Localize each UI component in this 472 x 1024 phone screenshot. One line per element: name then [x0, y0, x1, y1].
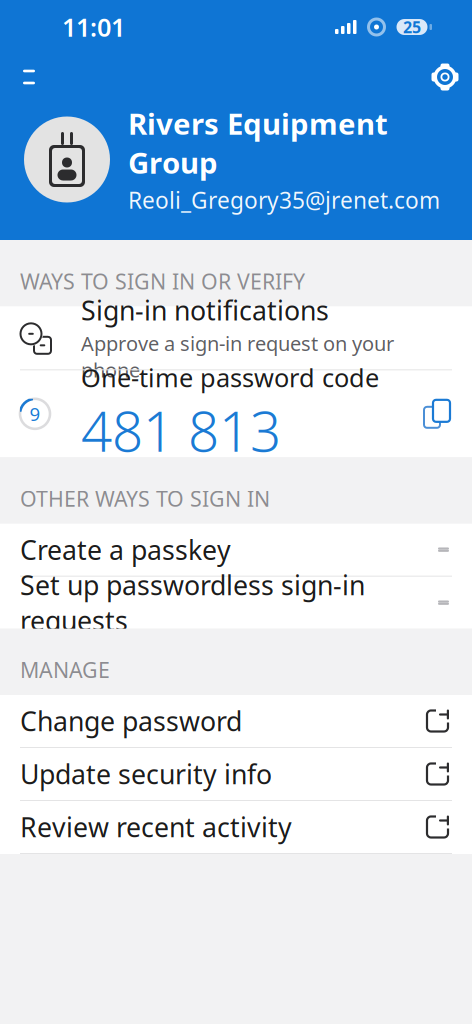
staticText: 25: [403, 16, 421, 38]
staticText: Approve a sign-in request on your phone: [81, 330, 394, 383]
staticText: OTHER WAYS TO SIGN IN: [20, 484, 270, 513]
staticText: 11:01: [62, 10, 125, 44]
button[interactable]: Set up passwordless sign-in requests: [0, 577, 472, 629]
staticText: Review recent activity: [20, 809, 292, 845]
button[interactable]: Update security info: [0, 748, 472, 800]
staticText: WAYS TO SIGN IN OR VERIFY: [20, 267, 305, 295]
button[interactable]: Review recent activity: [0, 801, 472, 853]
staticText: Create a passkey: [20, 532, 231, 567]
staticText: 9: [29, 401, 40, 426]
staticText: One-time password code: [81, 361, 379, 394]
button[interactable]: Settings: [422, 54, 468, 100]
button[interactable]: Create a passkey: [0, 524, 472, 576]
staticText: Update security info: [20, 756, 272, 792]
staticText: Reoli_Gregory35@jrenet.com: [128, 185, 440, 215]
staticText: Change password: [20, 703, 242, 739]
staticText: MANAGE: [20, 656, 110, 684]
button[interactable]: Back: [4, 54, 50, 100]
staticText: Set up passwordless sign-in requests: [20, 567, 365, 638]
staticText: Sign-in notifications: [81, 293, 329, 328]
staticText: Rivers Equipment Group: [128, 104, 388, 182]
button[interactable]: Sign-in notifications: [0, 306, 472, 369]
staticText: 481 813: [81, 394, 281, 467]
button[interactable]: 9: [0, 370, 472, 457]
button[interactable]: Change password: [0, 695, 472, 747]
